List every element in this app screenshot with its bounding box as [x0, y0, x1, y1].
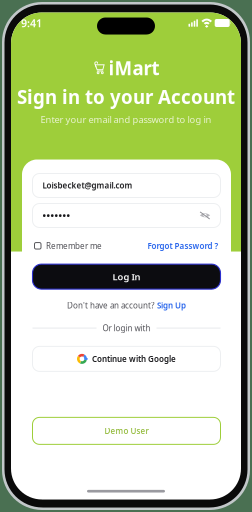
button[interactable]: Loisbecket@gmail.com	[32, 173, 220, 197]
staticText: iMart	[108, 55, 159, 80]
button[interactable]: Forgot Password ?	[147, 238, 218, 253]
staticText: Enter your email and password to log in	[40, 113, 211, 125]
button[interactable]: Demo User	[32, 417, 220, 444]
staticText: Don't have an account?	[67, 300, 154, 311]
staticText: Demo User	[104, 426, 148, 436]
button[interactable]: Remember me	[34, 238, 102, 253]
staticText: Remember me	[46, 240, 102, 251]
staticText: Continue with Google	[92, 354, 176, 364]
staticText: 9:41	[21, 16, 42, 30]
staticText: Loisbecket@gmail.com	[42, 180, 132, 191]
staticText: Log In	[112, 270, 140, 283]
staticText: Or login with	[102, 323, 150, 333]
button[interactable]: Log In	[32, 264, 220, 289]
button[interactable]: Sign Up	[157, 300, 186, 311]
staticText: •••••••	[42, 209, 70, 222]
button[interactable]: Continue with Google	[32, 346, 220, 371]
button[interactable]: •••••••	[32, 203, 220, 227]
staticText: Sign in to your Account	[17, 84, 235, 109]
staticText: Sign Up	[157, 300, 186, 311]
staticText: Forgot Password ?	[147, 240, 218, 251]
